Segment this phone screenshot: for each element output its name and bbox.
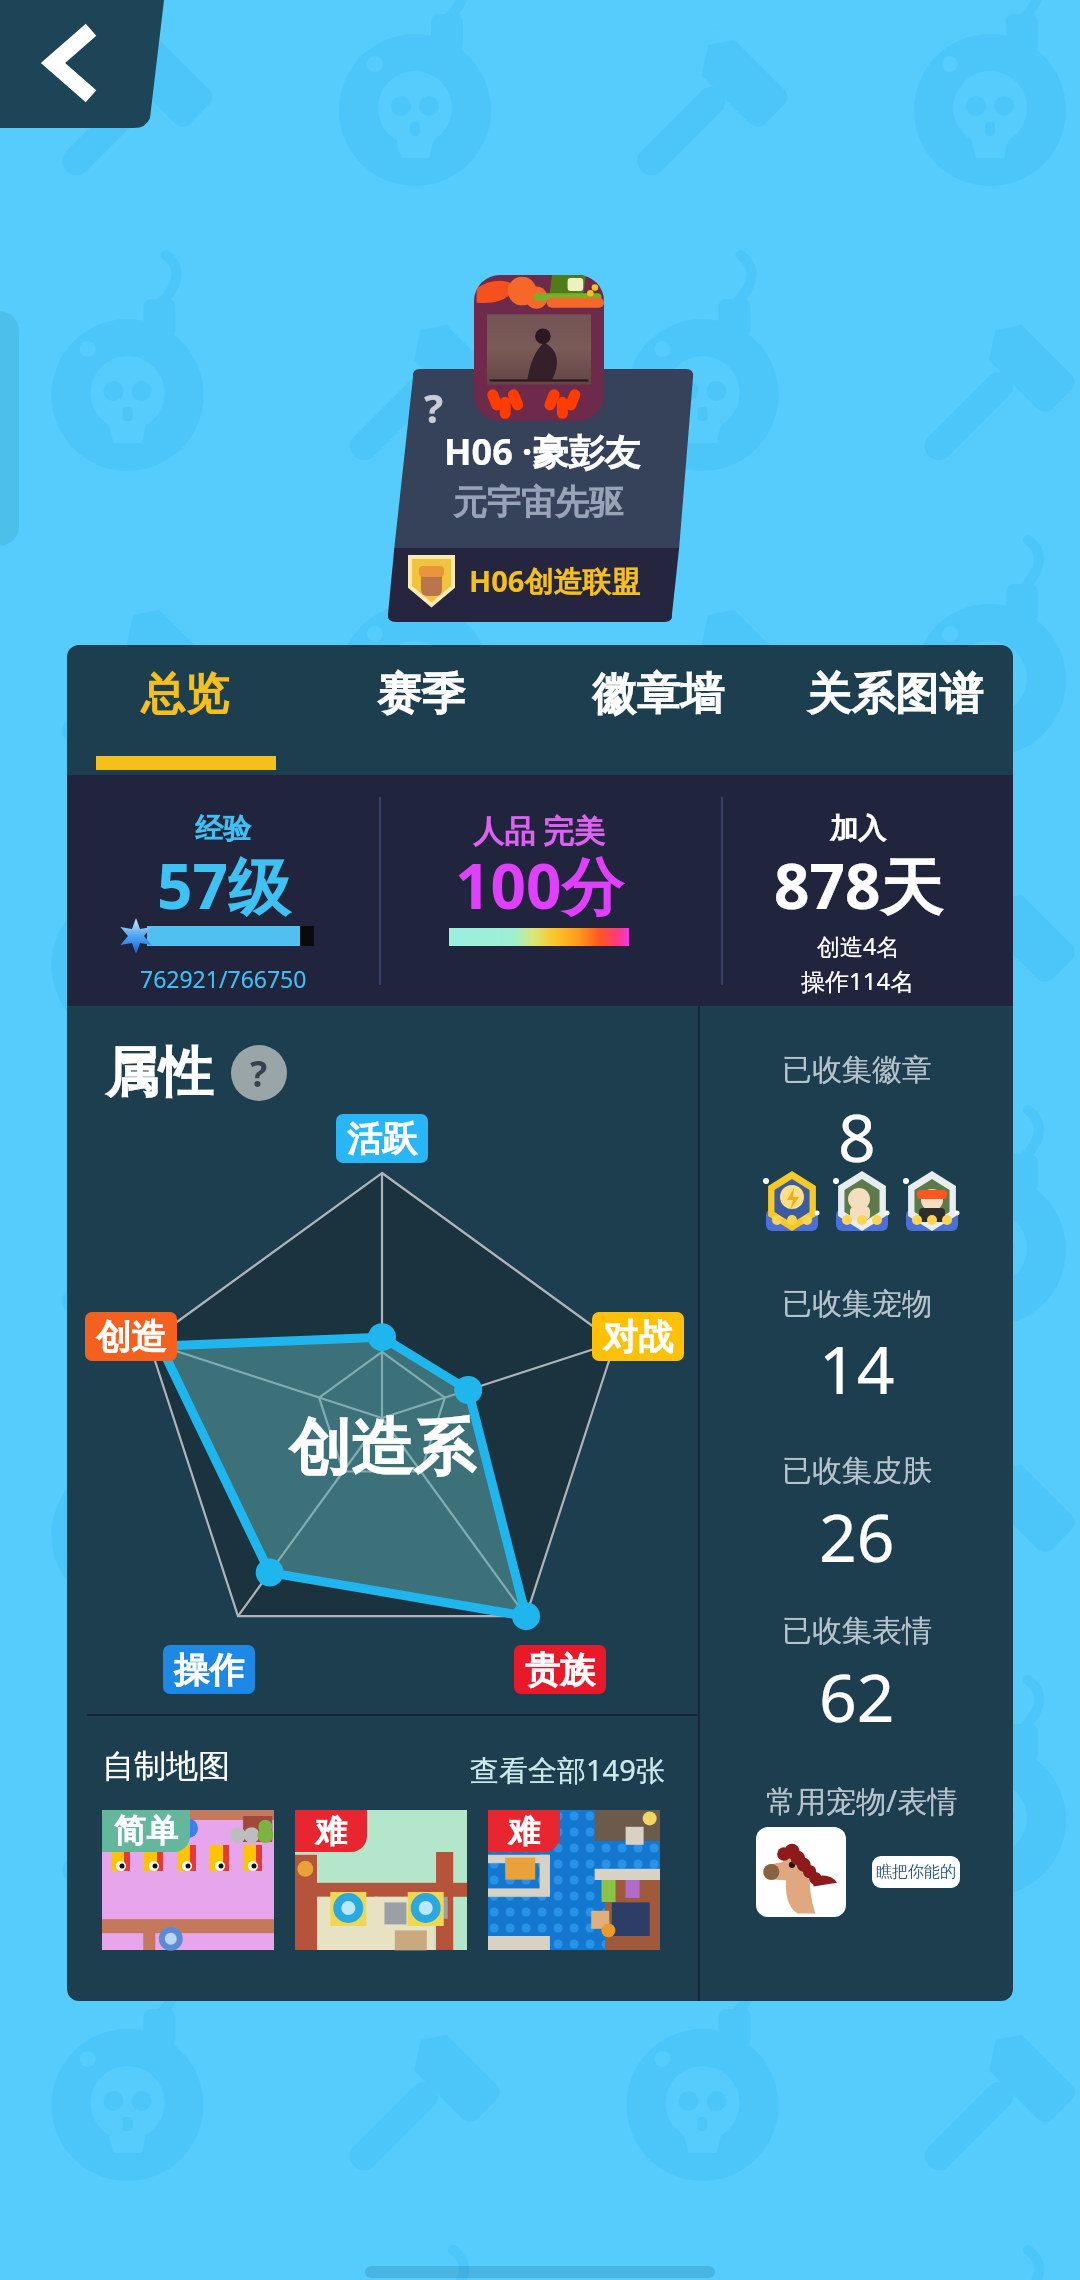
staticText: 元宇宙先驱 bbox=[453, 481, 623, 524]
staticText: 简单 bbox=[114, 1811, 178, 1851]
button[interactable]: 贵族 bbox=[514, 1645, 606, 1694]
staticText: 总览 bbox=[141, 667, 229, 722]
button[interactable]: Side tab bbox=[0, 311, 19, 546]
staticText: 经验 bbox=[195, 811, 251, 846]
button[interactable]: 活跃 bbox=[336, 1114, 428, 1163]
staticText: H06 ·豪彭友 bbox=[444, 427, 641, 476]
button[interactable]: Badge bbox=[900, 1169, 964, 1229]
staticText: ? bbox=[250, 1049, 268, 1098]
button[interactable]: Back bbox=[0, 0, 164, 128]
staticText: 关系图谱 bbox=[807, 667, 983, 722]
button[interactable]: Badge bbox=[760, 1169, 824, 1229]
button[interactable]: Help bbox=[231, 1045, 287, 1101]
staticText: 操作114名 bbox=[801, 964, 915, 997]
button[interactable]: 总览 bbox=[67, 645, 303, 775]
staticText: 已收集皮肤 bbox=[782, 1452, 932, 1490]
button[interactable]: Avatar bbox=[474, 275, 604, 421]
staticText: 赛季 bbox=[377, 667, 465, 722]
staticText: ? bbox=[424, 380, 444, 434]
staticText: 属性 bbox=[105, 1039, 213, 1107]
staticText: 100分 bbox=[455, 843, 624, 928]
staticText: 贵族 bbox=[525, 1648, 595, 1692]
staticText: 难 bbox=[508, 1811, 540, 1851]
staticText: 加入 bbox=[830, 811, 886, 846]
button[interactable]: 徽章墙 bbox=[539, 645, 776, 775]
staticText: 57级 bbox=[157, 843, 290, 928]
staticText: 活跃 bbox=[347, 1117, 417, 1161]
staticText: 创造系 bbox=[289, 1409, 475, 1487]
button[interactable]: Map 简单 bbox=[102, 1810, 274, 1950]
staticText: 已收集徽章 bbox=[782, 1051, 932, 1089]
staticText: 创造4名 bbox=[817, 930, 900, 961]
staticText: 操作 bbox=[174, 1648, 244, 1692]
button[interactable]: H06创造联盟 bbox=[410, 557, 641, 605]
staticText: 瞧把你能的 bbox=[876, 1862, 956, 1882]
staticText: 创造 bbox=[96, 1315, 166, 1359]
button[interactable]: 赛季 bbox=[303, 645, 539, 775]
staticText: 762921/766750 bbox=[140, 963, 307, 994]
staticText: 878天 bbox=[774, 843, 943, 928]
button[interactable]: 瞧把你能的 bbox=[872, 1856, 960, 1888]
button[interactable]: Map 难 bbox=[295, 1810, 467, 1950]
button[interactable]: 操作 bbox=[163, 1645, 255, 1694]
staticText: 徽章墙 bbox=[592, 667, 724, 722]
staticText: 对战 bbox=[603, 1315, 673, 1359]
staticText: 已收集宠物 bbox=[782, 1285, 932, 1323]
staticText: 已收集表情 bbox=[782, 1612, 932, 1650]
button[interactable]: 对战 bbox=[592, 1312, 684, 1361]
staticText: 62 bbox=[819, 1651, 895, 1741]
button[interactable]: Pet bbox=[756, 1827, 846, 1917]
button[interactable]: 创造 bbox=[85, 1312, 177, 1361]
button[interactable]: Badge bbox=[830, 1169, 894, 1229]
staticText: 自制地图 bbox=[102, 1746, 230, 1786]
staticText: 人品 完美 bbox=[473, 809, 606, 851]
button[interactable]: Map 难 bbox=[488, 1810, 660, 1950]
button[interactable]: 关系图谱 bbox=[776, 645, 1013, 775]
button[interactable]: 查看全部149张 bbox=[470, 1750, 665, 1790]
staticText: H06创造联盟 bbox=[469, 561, 641, 601]
staticText: 常用宠物/表情 bbox=[766, 1780, 958, 1821]
staticText: 8 bbox=[838, 1091, 876, 1181]
staticText: 14 bbox=[819, 1323, 895, 1413]
staticText: 难 bbox=[315, 1811, 347, 1851]
staticText: 26 bbox=[819, 1491, 895, 1581]
